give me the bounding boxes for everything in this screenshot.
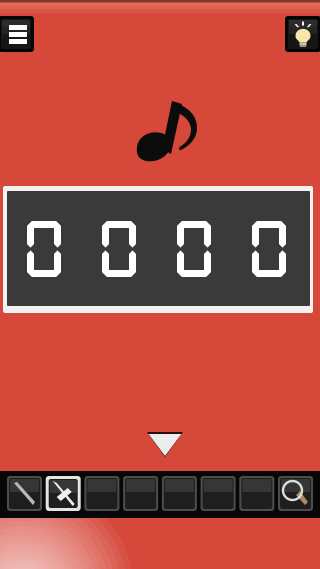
button[interactable]: Metal pin [7, 476, 42, 511]
button[interactable]: Screwdriver [46, 476, 81, 511]
button[interactable]: Empty inventory slot [162, 476, 197, 511]
button[interactable]: Empty inventory slot [239, 476, 274, 511]
button[interactable]: Empty inventory slot [123, 476, 158, 511]
button[interactable]: Hint [285, 16, 320, 52]
button[interactable]: Menu [0, 16, 34, 52]
button[interactable]: Empty inventory slot [201, 476, 236, 511]
button[interactable]: Move forward [147, 432, 183, 457]
button[interactable]: Empty inventory slot [84, 476, 119, 511]
button[interactable]: Magnifying glass [278, 476, 313, 511]
